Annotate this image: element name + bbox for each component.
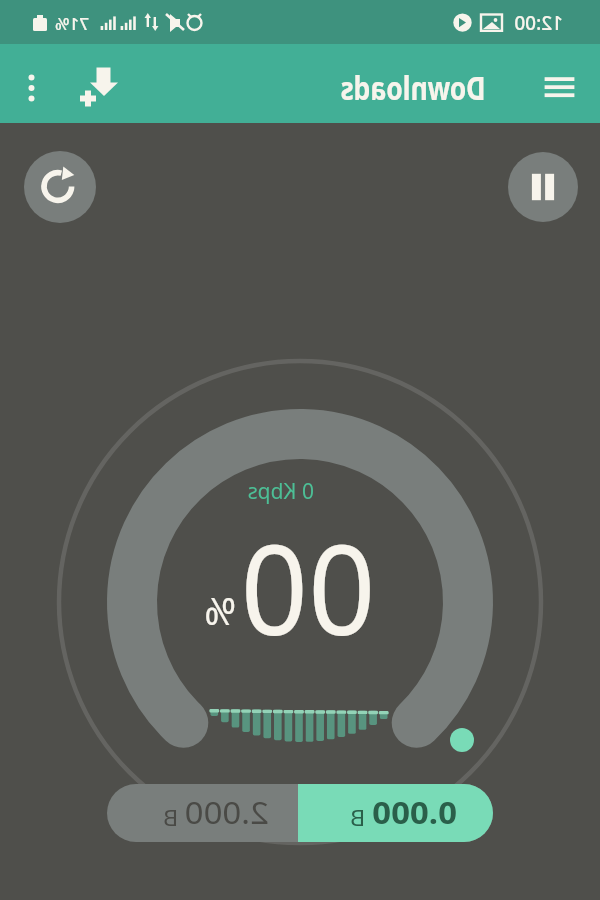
button[interactable]: Pause — [508, 152, 578, 222]
button[interactable]: Menu — [536, 60, 584, 108]
staticText: 0 Kbps — [247, 477, 314, 506]
staticText: 71% — [55, 12, 89, 35]
staticText: 00 — [240, 502, 375, 671]
button[interactable]: 0.000 — [107, 784, 493, 842]
staticText: 2.000 — [184, 792, 269, 833]
staticText: 12:00 — [514, 10, 563, 36]
staticText: 0.000 — [371, 792, 457, 833]
staticText: Downloads — [340, 66, 486, 110]
button[interactable]: Add download — [76, 62, 120, 106]
staticText: B — [349, 804, 371, 833]
button[interactable]: More options — [8, 61, 54, 107]
button[interactable]: Restart — [24, 151, 96, 223]
staticText: % — [204, 584, 236, 636]
staticText: B — [162, 804, 184, 833]
